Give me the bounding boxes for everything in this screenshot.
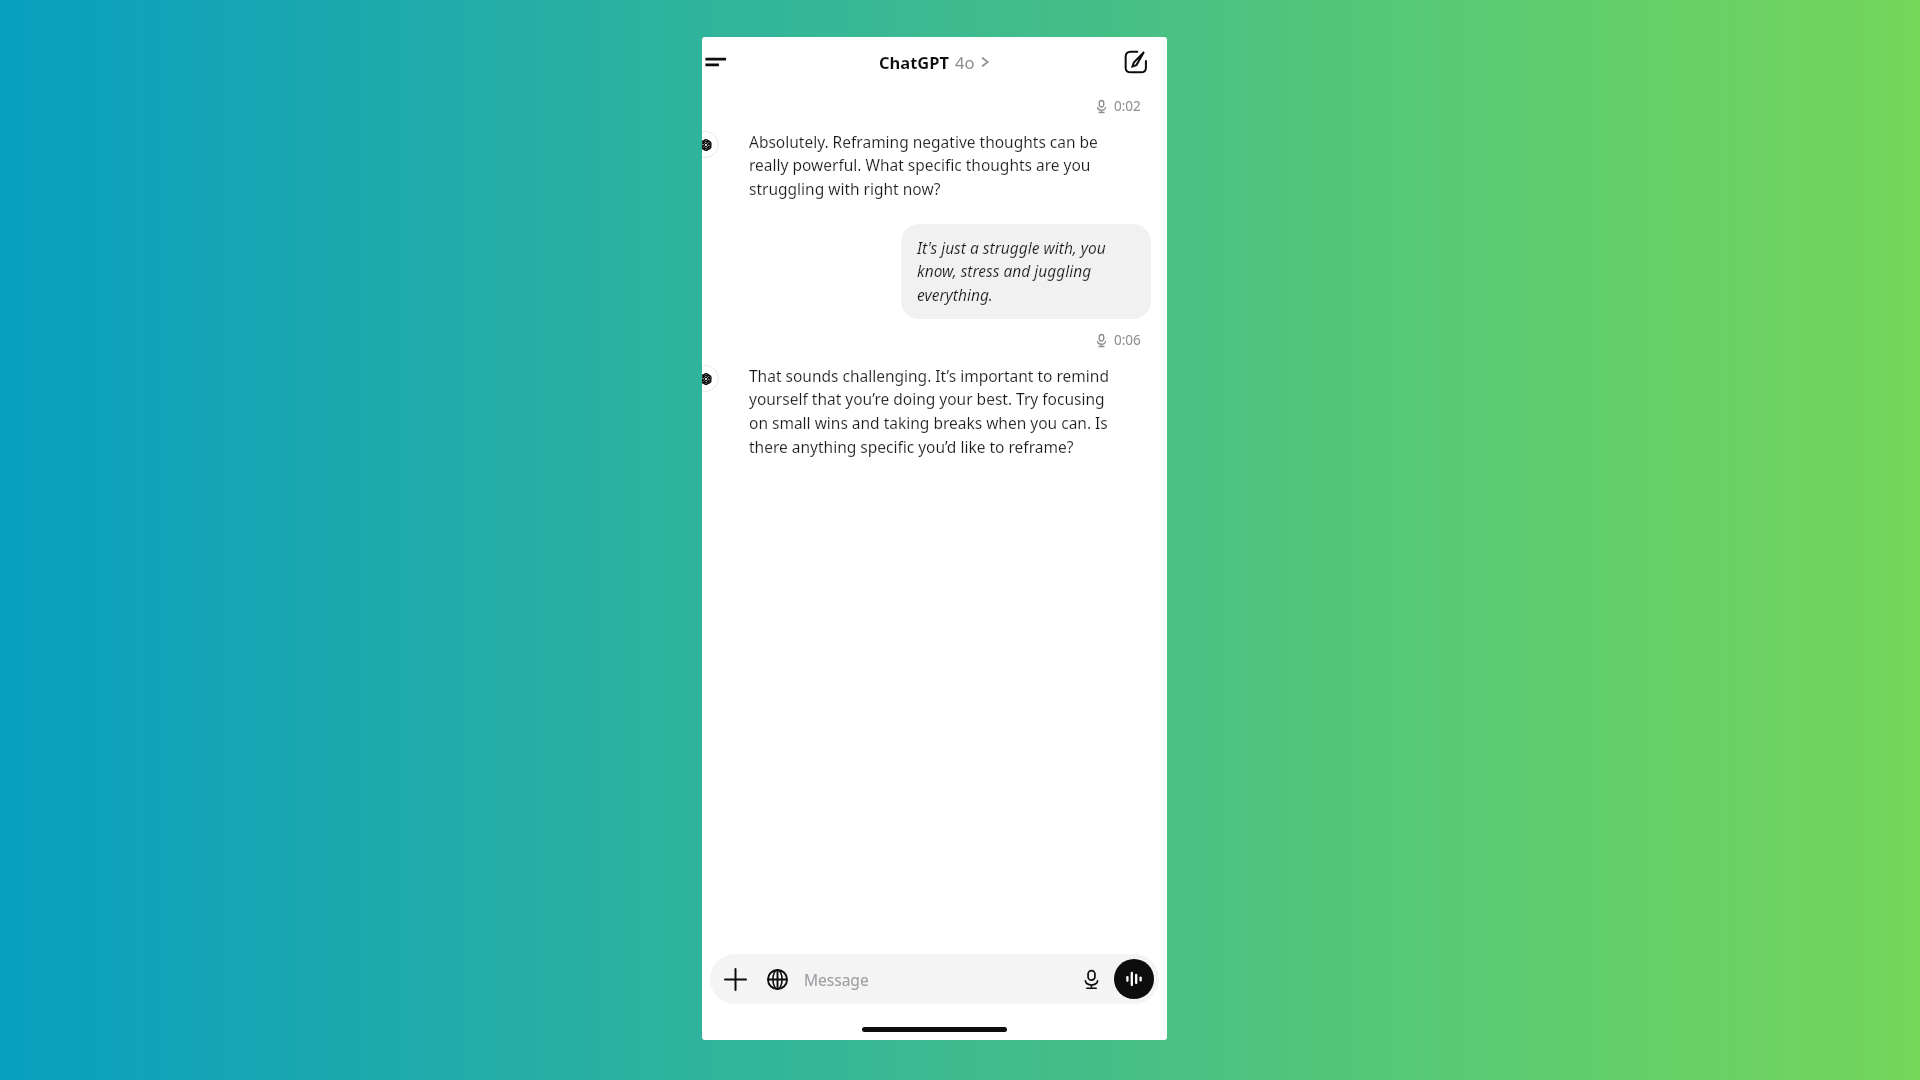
staticText: ChatGPT (879, 51, 950, 73)
button[interactable]: Voice mode (1114, 959, 1154, 999)
staticText: 4o (955, 51, 975, 73)
button[interactable]: Menu (702, 40, 738, 84)
staticText: That sounds challenging. It’s important … (749, 365, 1123, 458)
button[interactable]: It's just a struggle with, you know, str… (901, 224, 1151, 319)
button[interactable]: Message (804, 954, 1070, 1004)
button[interactable]: Dictate (1070, 958, 1112, 1000)
staticText: 0:06 (1114, 331, 1141, 349)
button[interactable]: New chat (1119, 45, 1153, 79)
staticText: 0:02 (1114, 97, 1141, 115)
staticText: Absolutely. Reframing negative thoughts … (749, 131, 1123, 200)
staticText: It's just a struggle with, you know, str… (917, 237, 1135, 306)
staticText: Message (804, 969, 869, 990)
button[interactable]: Attach (714, 958, 756, 1000)
button[interactable]: Browse the web (756, 958, 798, 1000)
button[interactable]: ChatGPT (873, 47, 996, 77)
